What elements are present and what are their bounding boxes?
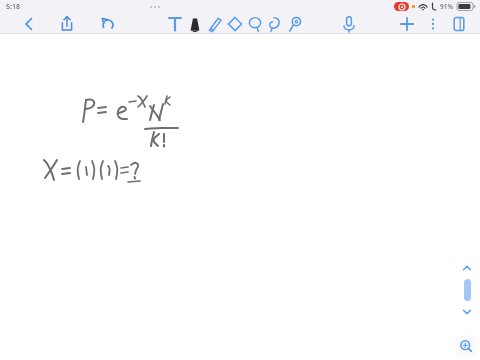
button[interactable]: Share — [58, 15, 76, 33]
button[interactable]: More options — [426, 15, 440, 33]
button[interactable]: Scroll down — [460, 306, 474, 318]
button[interactable]: Back — [20, 15, 38, 33]
button[interactable]: Stamp — [286, 15, 304, 33]
button[interactable]: Highlighter — [206, 15, 224, 33]
button[interactable]: Pages — [450, 15, 468, 33]
button[interactable]: Scroll up — [460, 262, 474, 274]
button[interactable]: Microphone — [340, 15, 358, 33]
button[interactable]: Add — [398, 15, 416, 33]
button[interactable]: Text tool — [166, 15, 184, 33]
staticText: 5:18 — [6, 2, 20, 12]
button[interactable]: Zoom — [455, 335, 477, 357]
staticText: 91% — [440, 2, 453, 11]
button[interactable] — [464, 279, 471, 301]
button[interactable]: Pen — [186, 15, 204, 33]
button[interactable]: Undo — [99, 15, 117, 33]
button[interactable]: Lasso — [246, 15, 264, 33]
button[interactable]: Eraser — [226, 15, 244, 33]
button[interactable]: Shape — [266, 15, 284, 33]
